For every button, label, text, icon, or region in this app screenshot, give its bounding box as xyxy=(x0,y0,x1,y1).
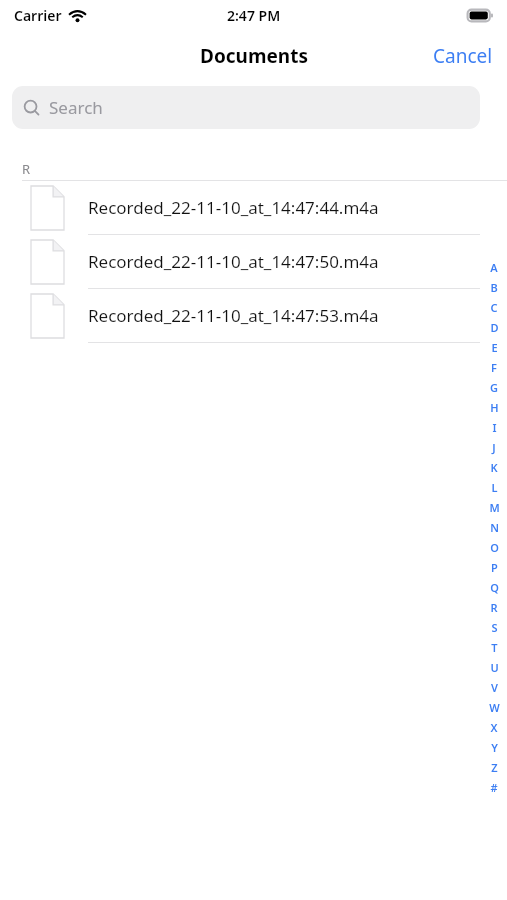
staticText: A xyxy=(490,260,498,275)
staticText: B xyxy=(490,280,498,295)
staticText: L xyxy=(491,480,498,495)
staticText: Carrier xyxy=(14,6,62,25)
staticText: Recorded_22-11-10_at_14:47:50.m4a xyxy=(88,250,379,273)
staticText: R xyxy=(22,160,31,178)
staticText: Z xyxy=(491,760,498,775)
staticText: Recorded_22-11-10_at_14:47:44.m4a xyxy=(88,196,379,219)
staticText: T xyxy=(491,640,498,655)
staticText: K xyxy=(490,460,498,475)
staticText: # xyxy=(490,780,498,795)
staticText: D xyxy=(490,320,499,335)
staticText: W xyxy=(489,700,500,715)
staticText: M xyxy=(489,500,500,515)
staticText: Y xyxy=(491,740,498,755)
button[interactable]: Recorded_22-11-10_at_14:47:53.m4a xyxy=(0,289,507,342)
staticText: R xyxy=(490,600,498,615)
staticText: P xyxy=(491,560,498,575)
staticText: G xyxy=(490,380,498,395)
staticText: S xyxy=(491,620,498,635)
staticText: H xyxy=(490,400,499,415)
staticText: Q xyxy=(490,580,499,595)
staticText: Search xyxy=(49,96,103,119)
staticText: C xyxy=(490,300,498,315)
button[interactable]: Cancel xyxy=(419,35,507,77)
staticText: X xyxy=(490,720,498,735)
button[interactable]: Recorded_22-11-10_at_14:47:50.m4a xyxy=(0,235,507,288)
staticText: V xyxy=(491,680,498,695)
staticText: O xyxy=(490,540,499,555)
staticText: I xyxy=(492,420,497,435)
staticText: Documents xyxy=(200,43,308,69)
button[interactable]: Recorded_22-11-10_at_14:47:44.m4a xyxy=(0,181,507,234)
staticText: N xyxy=(490,520,499,535)
staticText: Recorded_22-11-10_at_14:47:53.m4a xyxy=(88,304,379,327)
button[interactable]: Alphabet index xyxy=(483,260,505,795)
staticText: 2:47 PM xyxy=(227,6,281,25)
staticText: E xyxy=(491,340,498,355)
staticText: F xyxy=(491,360,497,375)
staticText: J xyxy=(492,440,496,455)
staticText: Cancel xyxy=(433,43,493,69)
button[interactable]: Search xyxy=(12,86,480,129)
staticText: U xyxy=(490,660,499,675)
